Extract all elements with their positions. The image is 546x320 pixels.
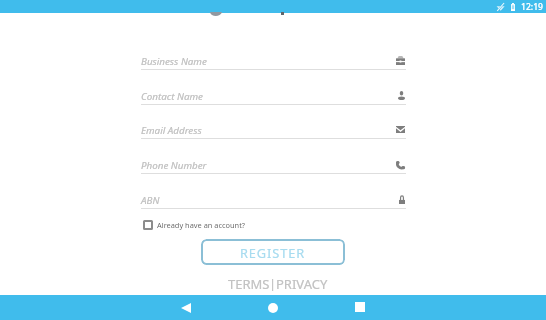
staticText: ABN [141,194,160,207]
button[interactable]: PRIVACY [276,275,328,291]
button[interactable]: Contact Name [141,82,406,105]
staticText: Phone Number [141,159,207,172]
button[interactable]: Home [263,298,283,318]
button[interactable]: Recents [350,297,370,317]
button[interactable]: Email Address [141,116,406,139]
button[interactable]: Already have an account? [143,218,246,232]
staticText: 12:19 [521,1,544,13]
staticText: Email Address [141,124,202,137]
button[interactable]: Back [176,298,196,318]
button[interactable]: TERMS [228,275,270,291]
staticText: Business Name [141,55,207,68]
button[interactable]: ABN [141,186,406,209]
staticText: | [269,275,277,291]
staticText: REGISTER [240,244,306,261]
staticText: Already have an account? [157,220,246,230]
button[interactable]: Business Name [141,47,406,70]
staticText: Contact Name [141,90,203,103]
button[interactable]: REGISTER [201,239,345,265]
button[interactable]: Phone Number [141,151,406,174]
